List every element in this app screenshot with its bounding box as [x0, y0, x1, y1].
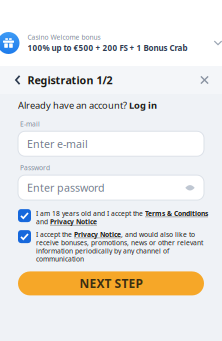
staticText: Enter e-mail: [27, 137, 88, 151]
button[interactable]: Already have an account? Log in: [18, 99, 204, 111]
staticText: I am 18 years old and I accept the Terms…: [36, 209, 208, 226]
staticText: Password: [20, 163, 50, 172]
button[interactable]: Registration 1/2: [0, 66, 122, 94]
staticText: Casino Welcome bonus: [27, 33, 100, 42]
staticText: Already have an account? Log in: [18, 99, 157, 111]
button[interactable]: Close: [187, 66, 222, 94]
staticText: NEXT STEP: [79, 275, 142, 291]
button[interactable]: I accept the Privacy Notice, and would a…: [18, 230, 204, 263]
button[interactable]: I am 18 years old and I accept the Terms…: [18, 209, 204, 226]
staticText: 100% up to €500 + 200 FS + 1 Bonus Crab: [27, 43, 187, 53]
staticText: I accept the Privacy Notice, and would a…: [36, 230, 203, 263]
button[interactable]: NEXT STEP: [18, 271, 204, 295]
staticText: Enter password: [27, 180, 105, 195]
staticText: E-mail: [20, 119, 40, 128]
staticText: Registration 1/2: [27, 73, 112, 87]
